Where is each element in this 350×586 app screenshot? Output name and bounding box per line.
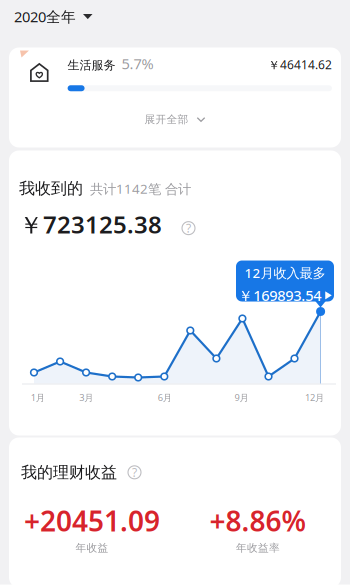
staticText: 1月 [31, 391, 45, 404]
staticText: 年收益率 [236, 541, 280, 554]
staticText: 展开全部 [144, 113, 188, 126]
staticText: 3月 [79, 391, 93, 404]
staticText: 共计1142笔 合计 [90, 180, 191, 197]
staticText: 生活服务 [68, 58, 116, 72]
staticText: 12月 [305, 391, 324, 404]
staticText: 12月收入最多 [244, 264, 325, 282]
staticText: 我的理财收益 [21, 462, 117, 482]
staticText: ￥169893.54 [238, 286, 321, 305]
staticText: 2020全年 [14, 7, 76, 26]
staticText: ? [186, 220, 191, 236]
staticText: 6月 [158, 391, 172, 404]
staticText: 年收益 [75, 541, 108, 554]
staticText: ? [132, 464, 137, 480]
staticText: ￥723125.38 [19, 208, 162, 240]
button[interactable]: 2020全年 [0, 0, 92, 34]
button[interactable]: 展开全部 [9, 97, 341, 141]
staticText: 9月 [234, 391, 248, 404]
staticText: 5.7% [122, 54, 154, 73]
staticText: ￥46414.62 [268, 57, 332, 73]
staticText: 我收到的 [19, 178, 83, 198]
staticText: +20451.09 [24, 502, 160, 539]
staticText: +8.86% [209, 502, 306, 539]
